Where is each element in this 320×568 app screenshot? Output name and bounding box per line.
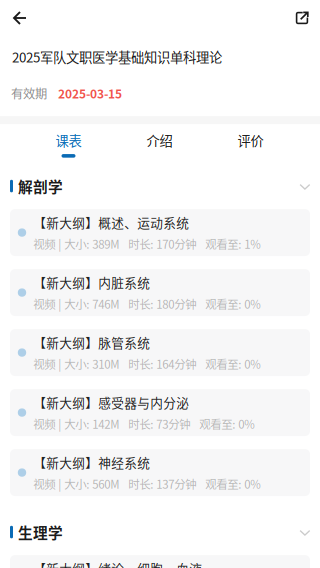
button[interactable]: 【新大纲】绪论、细胞、血液 [10,555,310,568]
button[interactable]: 生理学 [0,521,320,543]
staticText: 视频 | 大小: 142M 时长: 73分钟 观看至: 0% [33,415,255,432]
button[interactable]: 解剖学 [0,175,320,197]
button[interactable]: 介绍 [114,131,205,161]
staticText: 视频 | 大小: 389M 时长: 170分钟 观看至: 1% [33,235,261,252]
staticText: 【新大纲】绪论、细胞、血液 [33,559,202,568]
button[interactable]: 【新大纲】概述、运动系统 [10,209,310,256]
staticText: 课表 [55,130,81,150]
staticText: 【新大纲】内脏系统 [33,273,150,291]
staticText: 视频 | 大小: 746M 时长: 180分钟 观看至: 0% [33,295,261,312]
staticText: 视频 | 大小: 560M 时长: 137分钟 观看至: 0% [33,475,261,492]
staticText: 介绍 [146,130,172,150]
staticText: 视频 | 大小: 310M 时长: 164分钟 观看至: 0% [33,355,261,372]
button[interactable]: 【新大纲】脉管系统 [10,329,310,376]
staticText: 生理学 [18,521,63,543]
button[interactable]: Back [3,0,37,36]
button[interactable]: 【新大纲】神经系统 [10,449,310,496]
button[interactable]: 【新大纲】内脏系统 [10,269,310,316]
staticText: 【新大纲】神经系统 [33,453,150,471]
button[interactable]: 评价 [205,131,296,161]
staticText: 有效期 [11,84,47,102]
button[interactable]: 课表 [23,131,114,161]
button[interactable]: 【新大纲】感受器与内分泌 [10,389,310,436]
staticText: 【新大纲】概述、运动系统 [33,213,189,231]
staticText: 【新大纲】脉管系统 [33,333,150,351]
staticText: 2025-03-15 [58,84,122,102]
staticText: 解剖学 [18,175,63,197]
staticText: 2025军队文职医学基础知识单科理论 [12,47,222,66]
staticText: 评价 [237,130,263,150]
button[interactable]: Share [285,0,319,36]
staticText: 【新大纲】感受器与内分泌 [33,393,189,411]
